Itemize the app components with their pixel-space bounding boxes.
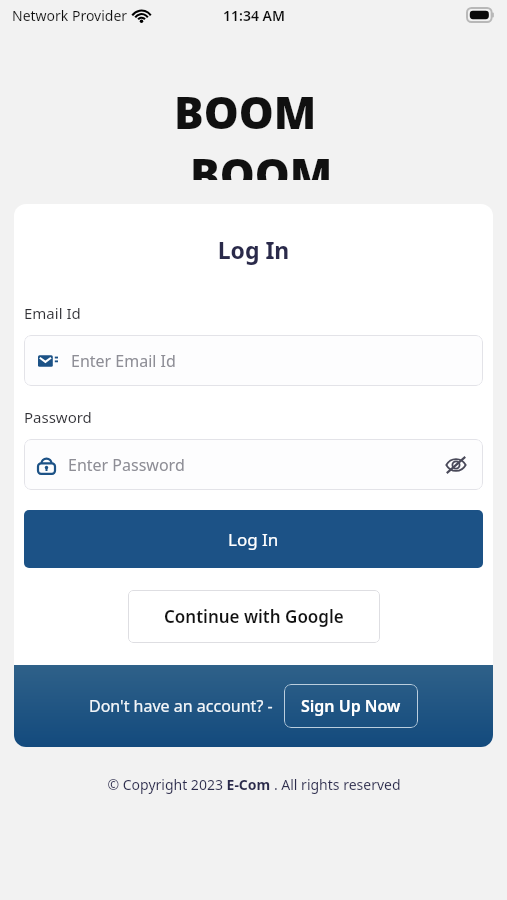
staticText: Enter Email Id — [71, 350, 469, 372]
button[interactable]: Continue with Google — [128, 590, 380, 643]
staticText: Enter Password — [68, 454, 443, 476]
staticText: © Copyright 2023 E-Com . All rights rese… — [107, 775, 401, 794]
staticText: Continue with Google — [164, 605, 344, 628]
staticText: Email Id — [24, 303, 81, 323]
button[interactable]: Password input — [24, 439, 483, 490]
staticText: Log In — [14, 234, 493, 265]
button[interactable]: Log In — [24, 510, 483, 568]
button[interactable]: Sign Up Now — [284, 684, 418, 728]
staticText: BOOM — [174, 82, 317, 142]
staticText: Network Provider — [12, 6, 128, 25]
staticText: Sign Up Now — [301, 695, 401, 717]
staticText: Log In — [228, 528, 279, 551]
button[interactable]: Email Id input — [24, 335, 483, 386]
button[interactable]: Show password — [443, 452, 469, 478]
staticText: 11:34 AM — [223, 6, 285, 25]
staticText: Password — [24, 407, 92, 427]
staticText: BOOM — [190, 144, 333, 180]
staticText: Don't have an account? - — [89, 695, 273, 717]
